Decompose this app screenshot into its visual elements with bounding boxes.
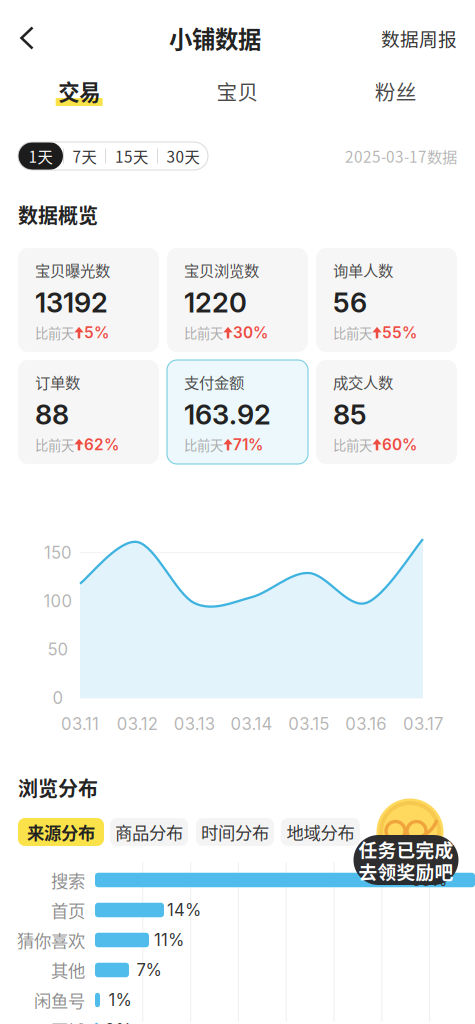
- staticText: 163.92: [184, 398, 271, 431]
- staticText: 50: [47, 639, 68, 660]
- button[interactable]: 订单数: [18, 360, 159, 464]
- staticText: 7%: [136, 960, 161, 980]
- staticText: 85: [333, 398, 367, 431]
- button[interactable]: 15天: [105, 142, 157, 170]
- staticText: 比前天: [184, 435, 223, 454]
- staticText: 03.11: [61, 714, 99, 734]
- button[interactable]: 宝贝: [158, 68, 317, 114]
- staticText: 同城: [51, 1017, 85, 1024]
- staticText: 55%: [382, 323, 417, 342]
- button[interactable]: 询单人数: [316, 248, 457, 352]
- staticText: 03.17: [403, 714, 443, 734]
- staticText: 30天: [166, 145, 199, 167]
- staticText: 宝贝曝光数: [35, 259, 110, 281]
- staticText: 65%: [411, 870, 447, 890]
- staticText: 03.12: [117, 714, 158, 734]
- staticText: 比前天: [184, 323, 223, 342]
- staticText: 猜你喜欢: [17, 927, 85, 953]
- staticText: 询单人数: [333, 259, 393, 281]
- staticText: 03.15: [288, 714, 329, 734]
- staticText: 03.14: [230, 714, 272, 734]
- staticText: 比前天: [35, 435, 74, 454]
- button[interactable]: 粉丝: [317, 68, 475, 114]
- staticText: 03.16: [345, 714, 386, 734]
- staticText: 1220: [184, 286, 247, 319]
- staticText: 比前天: [333, 435, 372, 454]
- staticText: 1天: [28, 145, 52, 167]
- staticText: 比前天: [35, 323, 74, 342]
- staticText: 数据周报: [381, 24, 457, 51]
- staticText: 首页: [51, 897, 85, 923]
- staticText: 2025-03-17数据: [345, 145, 457, 167]
- staticText: 30%: [233, 323, 268, 342]
- staticText: 闲鱼号: [34, 987, 85, 1013]
- button[interactable]: 任务已完成: [353, 835, 458, 885]
- staticText: 商品分布: [115, 819, 183, 845]
- button[interactable]: 30天: [157, 142, 208, 170]
- staticText: 100: [43, 591, 72, 611]
- staticText: 15天: [115, 145, 148, 167]
- staticText: 13192: [35, 286, 108, 319]
- staticText: 150: [44, 543, 72, 563]
- button[interactable]: Back: [5, 14, 49, 62]
- staticText: 时间分布: [201, 819, 269, 845]
- staticText: 14%: [167, 900, 201, 920]
- staticText: 地域分布: [286, 819, 354, 845]
- staticText: 浏览分布: [18, 773, 98, 802]
- staticText: 成交人数: [333, 371, 393, 393]
- button[interactable]: 成交人数: [316, 360, 457, 464]
- button[interactable]: 宝贝浏览数: [167, 248, 308, 352]
- staticText: 0: [52, 688, 63, 708]
- button[interactable]: 宝贝曝光数: [18, 248, 159, 352]
- staticText: 7天: [72, 145, 96, 167]
- staticText: 60%: [382, 435, 417, 454]
- staticText: 宝贝: [216, 76, 258, 106]
- staticText: 粉丝: [375, 76, 417, 106]
- staticText: 62%: [84, 435, 119, 454]
- button[interactable]: 1天: [18, 142, 63, 170]
- button[interactable]: 时间分布: [196, 818, 274, 846]
- button[interactable]: 支付金额: [167, 360, 308, 464]
- staticText: 来源分布: [27, 819, 95, 845]
- staticText: 5%: [84, 323, 109, 342]
- button[interactable]: 商品分布: [110, 818, 188, 846]
- staticText: 03.13: [174, 714, 215, 734]
- staticText: 搜索: [51, 867, 85, 893]
- staticText: 1%: [108, 990, 131, 1010]
- button[interactable]: 地域分布: [281, 818, 360, 846]
- staticText: 任务已完成: [358, 835, 453, 862]
- staticText: 其他: [51, 957, 85, 983]
- button[interactable]: 7天: [63, 142, 105, 170]
- button[interactable]: 交易: [0, 68, 158, 114]
- button[interactable]: 数据周报: [381, 14, 457, 62]
- staticText: 88: [35, 398, 69, 431]
- staticText: 71%: [233, 435, 263, 454]
- staticText: 宝贝浏览数: [184, 259, 259, 281]
- staticText: 交易: [58, 76, 100, 106]
- staticText: 11%: [154, 930, 184, 950]
- staticText: 支付金额: [184, 371, 244, 393]
- staticText: 56: [333, 286, 367, 319]
- staticText: 0%: [104, 1020, 131, 1024]
- staticText: 比前天: [333, 323, 372, 342]
- staticText: 数据概览: [18, 200, 98, 229]
- button[interactable]: 来源分布: [18, 818, 104, 846]
- staticText: 去领奖励吧: [358, 857, 453, 884]
- staticText: 订单数: [35, 371, 80, 393]
- staticText: 小铺数据: [169, 21, 261, 55]
